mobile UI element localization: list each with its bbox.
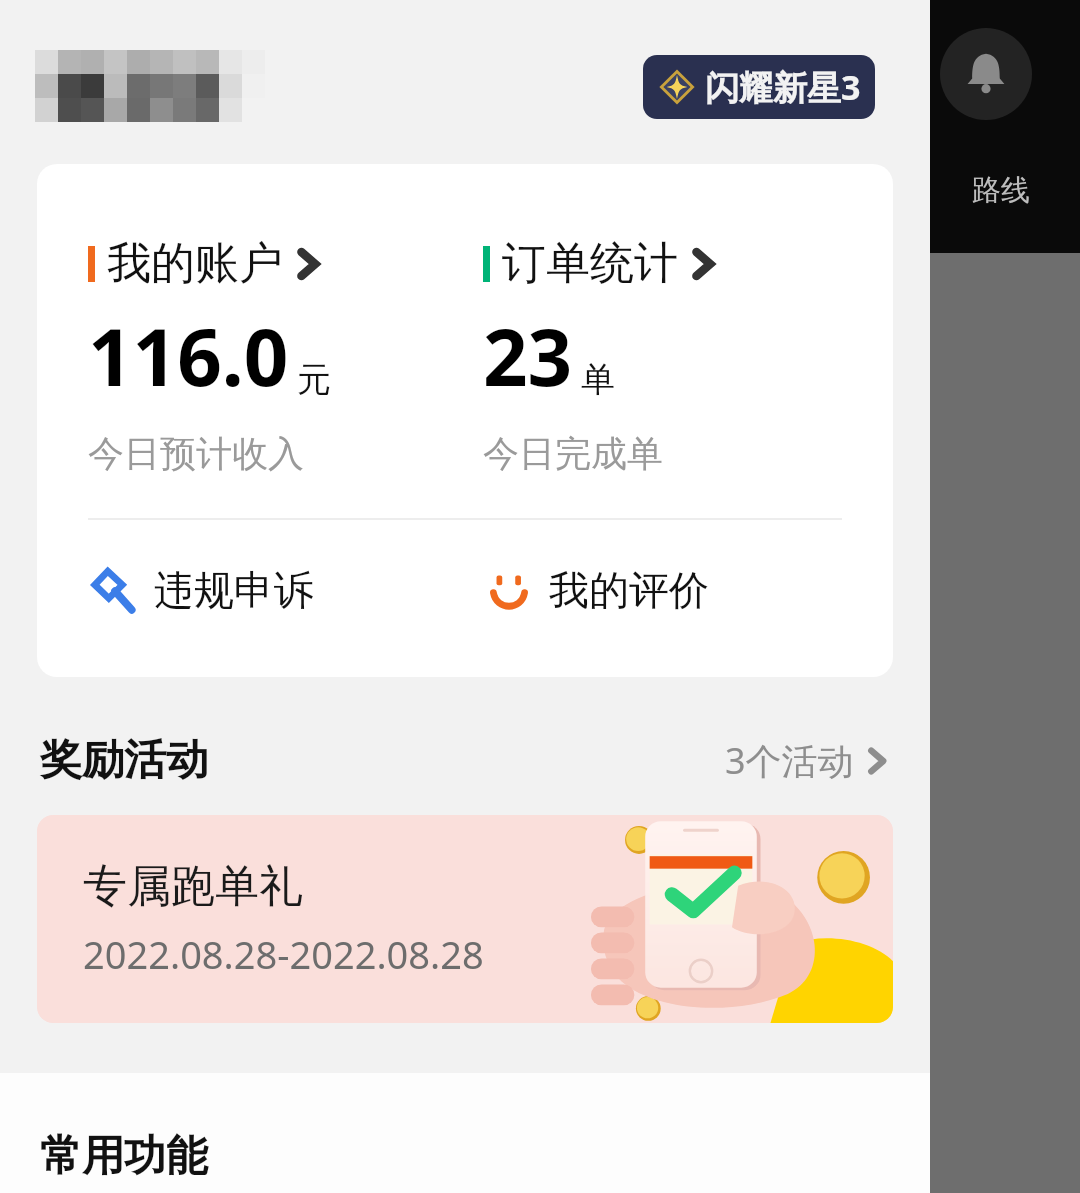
staticText: 订单统计 xyxy=(502,236,678,291)
staticText: 专属跑单礼 xyxy=(83,859,303,914)
staticText: 今日完成单 xyxy=(483,431,663,476)
button[interactable]: 我的账户 xyxy=(88,236,465,476)
staticText: 单 xyxy=(581,358,615,401)
button[interactable]: 我的评价 xyxy=(465,564,893,616)
button[interactable]: 3个活动 xyxy=(725,736,890,785)
button[interactable]: 订单统计 xyxy=(483,236,893,476)
button[interactable]: 专属跑单礼 xyxy=(37,815,893,1023)
staticText: 2022.08.28-2022.08.28 xyxy=(83,928,484,980)
staticText: 23 xyxy=(483,303,573,409)
staticText: 116.0 xyxy=(88,303,289,409)
staticText: 我的评价 xyxy=(549,565,709,615)
staticText: 我的账户 xyxy=(107,236,283,291)
button[interactable]: 违规申诉 xyxy=(37,564,465,616)
staticText: 3个活动 xyxy=(725,736,854,785)
staticText: 元 xyxy=(297,358,331,401)
button[interactable]: Notifications xyxy=(940,28,1032,120)
staticText: 今日预计收入 xyxy=(88,431,304,476)
staticText: 路线 xyxy=(972,172,1030,209)
staticText: 常用功能 xyxy=(40,1130,208,1183)
staticText: 闪耀新星3 xyxy=(705,64,861,110)
staticText: 违规申诉 xyxy=(154,565,314,615)
staticText: 奖励活动 xyxy=(40,734,208,787)
button[interactable]: 闪耀新星3 xyxy=(643,55,875,119)
